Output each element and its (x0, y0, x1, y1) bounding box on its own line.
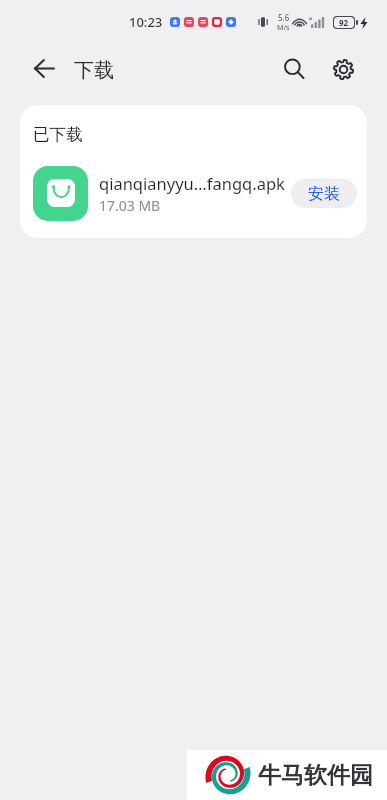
staticText: qianqianyyu…fangq.apk (99, 172, 285, 194)
staticText: 17.03 MB (99, 196, 161, 215)
button[interactable]: Settings (321, 47, 365, 91)
button[interactable]: Search (272, 47, 316, 91)
staticText: 92 (339, 17, 349, 28)
staticText: M/s (277, 23, 290, 33)
staticText: 下载 (74, 58, 114, 83)
button[interactable]: Back (22, 46, 66, 90)
staticText: 已下载 (33, 124, 83, 145)
button[interactable]: 安装 (291, 179, 357, 208)
button[interactable]: qianqianyyu…fangq.apk (20, 158, 367, 228)
staticText: 10:23 (129, 13, 163, 31)
staticText: 5.6 (278, 12, 290, 23)
staticText: 安装 (308, 184, 340, 204)
staticText: 牛马软件园 (258, 761, 373, 790)
